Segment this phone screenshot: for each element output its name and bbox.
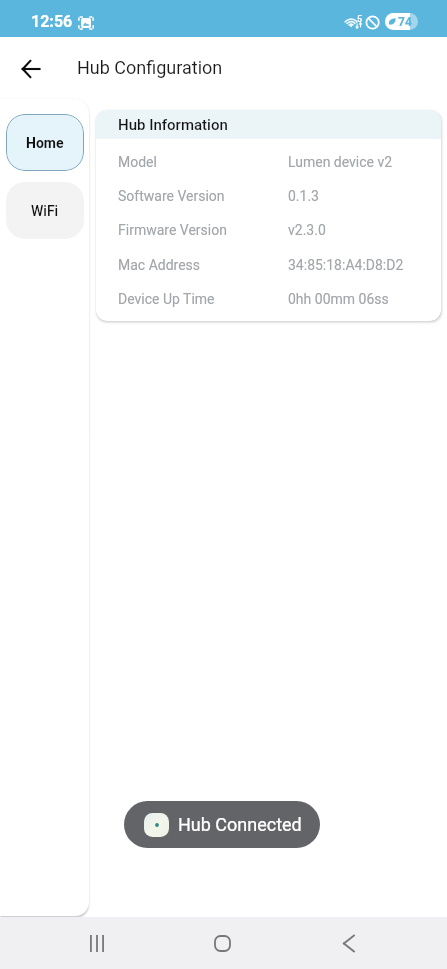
staticText: Home (26, 135, 64, 151)
staticText: Device Up Time (118, 291, 215, 307)
staticText: Hub Connected (178, 814, 302, 835)
staticText: v2.3.0 (288, 222, 326, 238)
button[interactable]: Back (324, 917, 372, 969)
staticText: 5 (357, 14, 363, 25)
staticText: Hub Configuration (77, 57, 223, 78)
staticText: 34:85:18:A4:D8:D2 (288, 257, 404, 273)
staticText: Software Version (118, 188, 225, 204)
staticText: 0hh 00mm 06ss (288, 291, 389, 307)
button[interactable]: Home (198, 917, 246, 969)
button[interactable]: Recents (73, 917, 121, 969)
staticText: WiFi (31, 203, 59, 219)
staticText: Firmware Version (118, 222, 227, 238)
staticText: Hub Information (118, 116, 228, 134)
button[interactable]: WiFi (6, 182, 84, 239)
staticText: Lumen device v2 (288, 154, 393, 170)
staticText: 74 (398, 15, 412, 29)
staticText: Model (118, 154, 157, 170)
button[interactable]: Hub Connected (124, 801, 320, 848)
button[interactable]: Back (8, 46, 53, 91)
staticText: 0.1.3 (288, 188, 319, 204)
staticText: Mac Address (118, 257, 201, 273)
staticText: 12:56 (31, 12, 73, 31)
button[interactable]: Home (6, 114, 84, 171)
